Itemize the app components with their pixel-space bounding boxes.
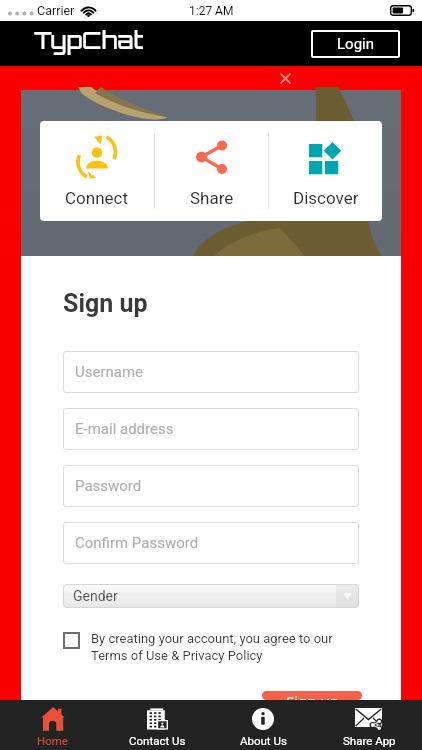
staticText: Confirm Password	[75, 534, 199, 552]
button[interactable]: Discover	[269, 121, 382, 221]
button[interactable]: Terms of Use & Privacy Policy	[91, 648, 263, 663]
button[interactable]: Close	[275, 68, 295, 88]
staticText: Contact Us	[129, 734, 186, 747]
staticText: Sign up	[63, 289, 148, 318]
staticText: Home	[37, 734, 68, 747]
staticText: Username	[75, 363, 144, 381]
button[interactable]: Confirm Password	[63, 522, 359, 564]
staticText: TypChat	[34, 25, 144, 54]
button[interactable]: Home	[0, 700, 105, 750]
staticText: Share	[190, 188, 234, 208]
button[interactable]: Username	[63, 351, 359, 393]
button[interactable]: About Us	[210, 700, 316, 750]
staticText: Sign up	[286, 691, 339, 700]
button[interactable]: Sign up	[262, 691, 362, 700]
staticText: Gender	[73, 588, 118, 604]
staticText: About Us	[240, 734, 287, 747]
staticText: Connect	[65, 188, 129, 208]
staticText: Share App	[343, 734, 396, 747]
staticText: Password	[75, 477, 142, 495]
staticText: E-mail address	[75, 420, 174, 438]
staticText: Discover	[293, 188, 359, 208]
staticText: Carrier	[37, 3, 75, 18]
button[interactable]: Share App	[316, 700, 422, 750]
staticText: Login	[337, 35, 374, 53]
button[interactable]: Password	[63, 465, 359, 507]
button[interactable]: Login	[311, 30, 400, 58]
staticText: 1:27 AM	[189, 4, 234, 18]
button[interactable]: Agree to terms	[63, 632, 80, 649]
button[interactable]: Share	[155, 121, 268, 221]
button[interactable]: Gender	[63, 584, 359, 608]
button[interactable]: Connect	[40, 121, 154, 221]
button[interactable]: E-mail address	[63, 408, 359, 450]
button[interactable]: Contact Us	[105, 700, 210, 750]
staticText: By creating your account, you agree to o…	[91, 631, 333, 646]
